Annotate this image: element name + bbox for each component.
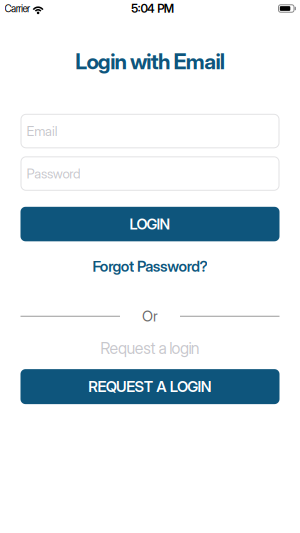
button[interactable]: Password [20,156,279,191]
staticText: Forgot [93,257,134,275]
staticText: LOGIN [129,215,170,233]
staticText: Or [142,307,158,325]
staticText: Carrier [4,2,30,15]
staticText: Password [26,165,81,182]
staticText: LOGIN [170,378,212,396]
staticText: A [156,378,166,396]
button[interactable]: Email [20,114,279,148]
staticText: Login with Email [75,48,225,74]
staticText: Password? [137,257,207,275]
button[interactable]: Request a login [20,335,279,361]
button[interactable]: Forgot [93,257,207,275]
staticText: REQUEST [88,378,153,396]
button[interactable]: LOGIN [20,207,279,241]
button[interactable]: REQUEST [20,369,279,404]
staticText: Email [26,123,58,139]
staticText: Request a login [100,338,200,358]
staticText: 5:04 PM [131,1,174,16]
